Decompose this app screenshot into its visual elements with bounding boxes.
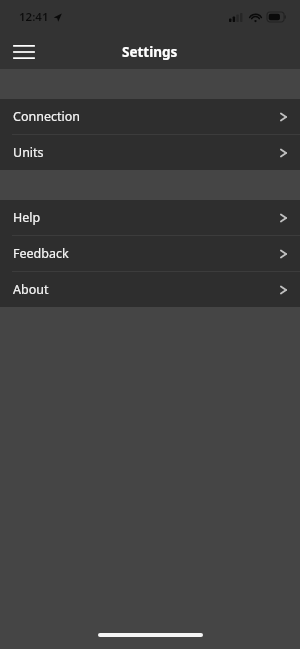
button[interactable]: Feedback — [0, 236, 300, 271]
staticText: About — [13, 281, 49, 298]
staticText: Connection — [13, 108, 80, 125]
button[interactable]: Open navigation menu — [8, 36, 40, 68]
button[interactable]: Connection — [0, 99, 300, 134]
staticText: Settings — [122, 43, 178, 61]
staticText: Units — [13, 144, 44, 161]
button[interactable]: About — [0, 272, 300, 307]
staticText: Feedback — [13, 245, 69, 262]
button[interactable]: Help — [0, 200, 300, 235]
staticText: Help — [13, 209, 41, 226]
staticText: 12:41 — [19, 9, 49, 25]
button[interactable]: Units — [0, 135, 300, 170]
